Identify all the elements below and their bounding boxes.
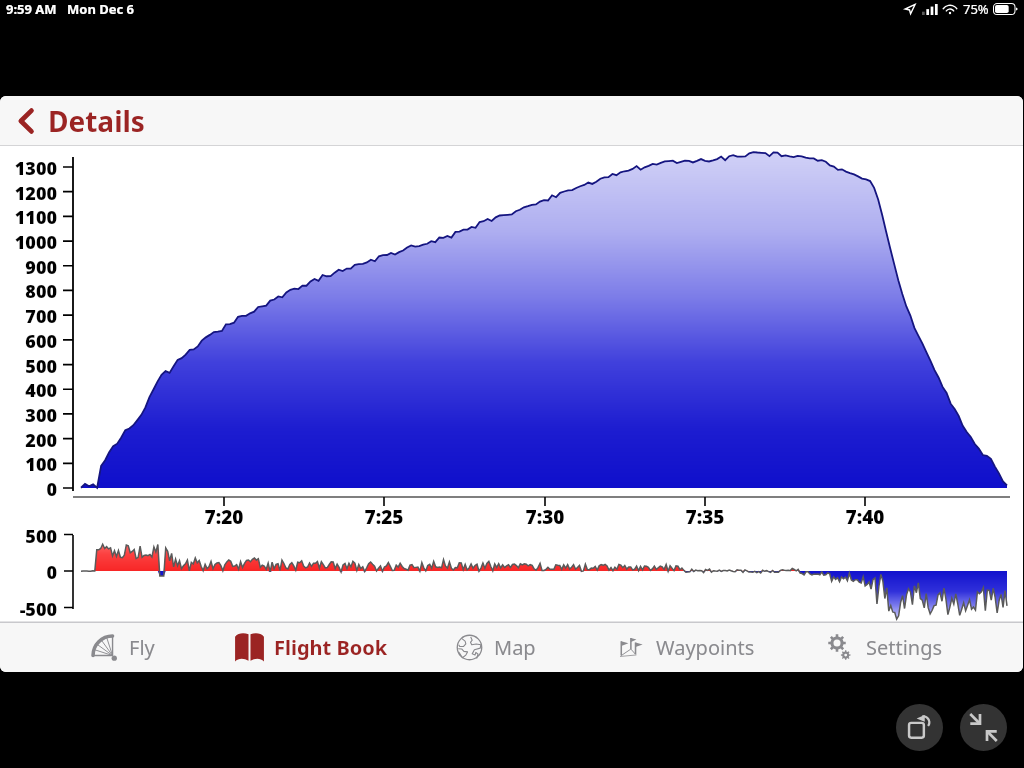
staticText: 600	[0, 329, 57, 354]
staticText: 7:40	[825, 504, 905, 530]
staticText: 0	[0, 560, 57, 585]
button[interactable]: Minimize window	[960, 704, 1007, 751]
button[interactable]: Map	[440, 623, 550, 672]
staticText: 400	[0, 378, 57, 403]
staticText: 500	[0, 354, 57, 379]
button[interactable]: Rotate screen	[896, 704, 943, 751]
staticText: 200	[0, 428, 57, 453]
staticText: 1300	[0, 156, 57, 181]
staticText: Flight Book	[274, 634, 388, 661]
staticText: 500	[0, 524, 57, 549]
button[interactable]: Waypoints	[602, 623, 769, 672]
staticText: 100	[0, 452, 57, 477]
button[interactable]: Flight Book	[220, 623, 402, 672]
staticText: 9:59 AM	[6, 0, 57, 18]
staticText: 1000	[0, 230, 57, 255]
staticText: -500	[0, 597, 57, 622]
staticText: 800	[0, 279, 57, 304]
staticText: 1200	[0, 181, 57, 206]
staticText: 7:30	[505, 504, 585, 530]
staticText: 7:20	[184, 504, 264, 530]
staticText: 700	[0, 304, 57, 329]
staticText: Waypoints	[656, 634, 755, 661]
staticText: 300	[0, 403, 57, 428]
staticText: 900	[0, 255, 57, 280]
button[interactable]: Settings	[812, 623, 957, 672]
staticText: 7:35	[665, 504, 745, 530]
staticText: Fly	[129, 634, 155, 661]
staticText: 1100	[0, 205, 57, 230]
staticText: Map	[494, 634, 536, 661]
staticText: 75%	[963, 0, 989, 18]
staticText: Mon Dec 6	[67, 0, 135, 18]
button[interactable]: Fly	[75, 623, 169, 672]
staticText: 0	[0, 477, 57, 502]
button[interactable]: Details	[0, 96, 1023, 145]
staticText: 7:25	[344, 504, 424, 530]
staticText: Details	[48, 102, 145, 140]
staticText: Settings	[866, 634, 943, 661]
